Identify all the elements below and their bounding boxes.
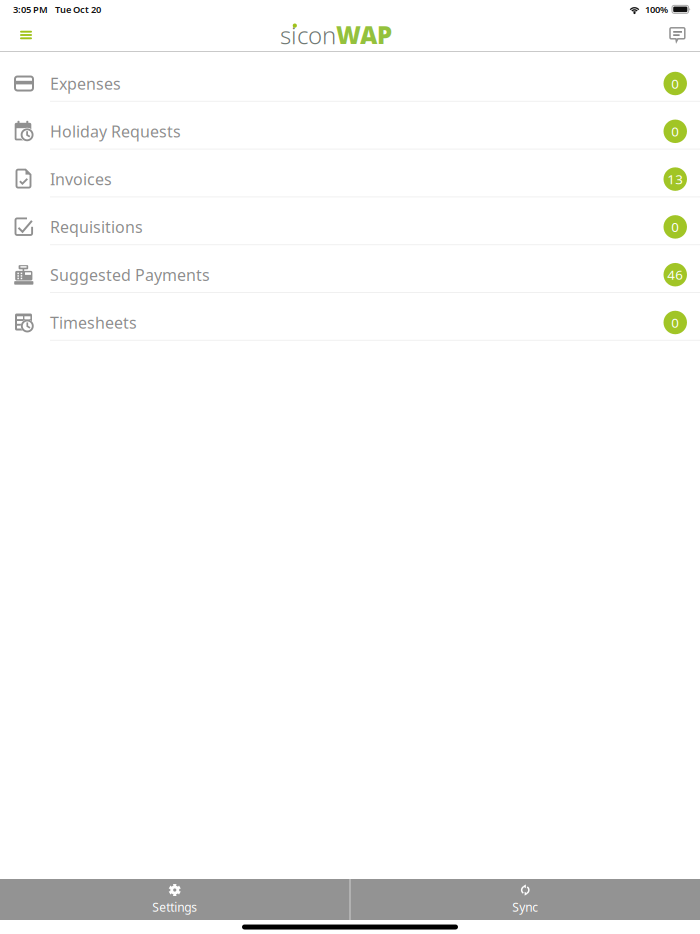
staticText: sicon [280, 19, 336, 51]
button[interactable]: Sync [350, 879, 700, 920]
staticText: 0 [671, 314, 679, 331]
staticText: 3:05 PM [13, 3, 48, 16]
staticText: Sync [512, 899, 538, 915]
staticText: 0 [671, 218, 679, 236]
button[interactable]: Messages [660, 19, 696, 51]
staticText: 13 [667, 170, 683, 188]
button[interactable]: Menu [8, 19, 44, 51]
staticText: 46 [667, 266, 683, 283]
staticText: Requisitions [50, 216, 143, 237]
button[interactable]: Timesheets [0, 293, 700, 341]
staticText: Suggested Payments [50, 264, 210, 285]
button[interactable]: Holiday Requests [0, 102, 700, 150]
staticText: 100% [645, 3, 668, 16]
button[interactable]: Invoices [0, 150, 700, 197]
staticText: 0 [671, 75, 679, 92]
staticText: Tue Oct 20 [55, 3, 101, 16]
staticText: Invoices [50, 168, 112, 190]
staticText: 0 [671, 122, 679, 140]
staticText: Timesheets [50, 312, 137, 333]
button[interactable]: Requisitions [0, 197, 700, 245]
staticText: Holiday Requests [50, 121, 181, 142]
staticText: Expenses [50, 73, 121, 94]
staticText: Settings [152, 899, 197, 915]
button[interactable]: Settings [0, 879, 349, 920]
button[interactable]: Expenses [0, 54, 700, 102]
button[interactable]: Suggested Payments [0, 245, 700, 293]
staticText: WAP [336, 19, 392, 51]
